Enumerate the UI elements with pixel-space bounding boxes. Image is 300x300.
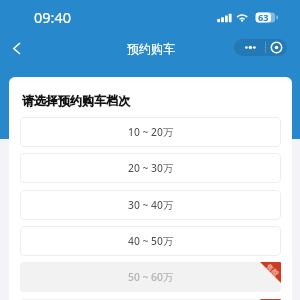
staticText: 10 ~ 20万 [128, 125, 174, 139]
button[interactable]: 50 ~ 60万 [20, 262, 281, 292]
button[interactable]: 30 ~ 40万 [20, 190, 281, 220]
button[interactable]: 40 ~ 50万 [20, 226, 281, 256]
staticText: 请选择预约购车档次 [22, 93, 130, 108]
staticText: 20 ~ 30万 [128, 161, 174, 175]
staticText: 预约购车 [127, 41, 175, 56]
button[interactable]: 60 ~ 70万 [20, 299, 281, 300]
button[interactable]: 20 ~ 30万 [20, 153, 281, 183]
staticText: 40 ~ 50万 [128, 234, 174, 248]
button[interactable]: Back [5, 37, 27, 59]
staticText: 售罄 [264, 299, 281, 300]
button[interactable]: 10 ~ 20万 [20, 117, 281, 147]
staticText: 09:40 [34, 7, 72, 27]
staticText: 63 [258, 11, 269, 24]
staticText: 售罄 [264, 262, 281, 279]
staticText: 30 ~ 40万 [128, 198, 174, 212]
button[interactable]: More options [234, 39, 287, 56]
staticText: 50 ~ 60万 [128, 270, 174, 284]
